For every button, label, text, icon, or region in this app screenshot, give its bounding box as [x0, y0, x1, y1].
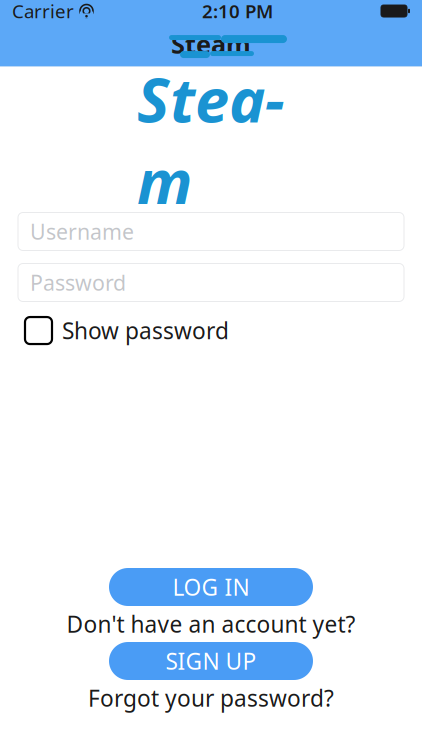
button[interactable]: Show password	[25, 315, 229, 346]
staticText: Carrier	[12, 0, 74, 23]
staticText: LOG IN	[172, 572, 249, 602]
staticText: Forgot your password?	[88, 683, 334, 713]
staticText: Steam	[171, 27, 251, 61]
button[interactable]: SIGN UP	[109, 642, 313, 680]
button[interactable]: LOG IN	[109, 568, 313, 606]
staticText: Password	[30, 268, 126, 297]
staticText: Username	[30, 217, 134, 246]
button[interactable]: Steam	[0, 22, 422, 66]
button[interactable]: Don't have an account yet?	[66, 606, 355, 642]
staticText: SIGN UP	[165, 646, 256, 676]
staticText: Show password	[62, 315, 229, 346]
staticText: Steam	[137, 58, 285, 221]
button[interactable]: Forgot your password?	[88, 680, 334, 716]
staticText: Don't have an account yet?	[66, 609, 355, 639]
staticText: 2:10 PM	[202, 0, 273, 23]
